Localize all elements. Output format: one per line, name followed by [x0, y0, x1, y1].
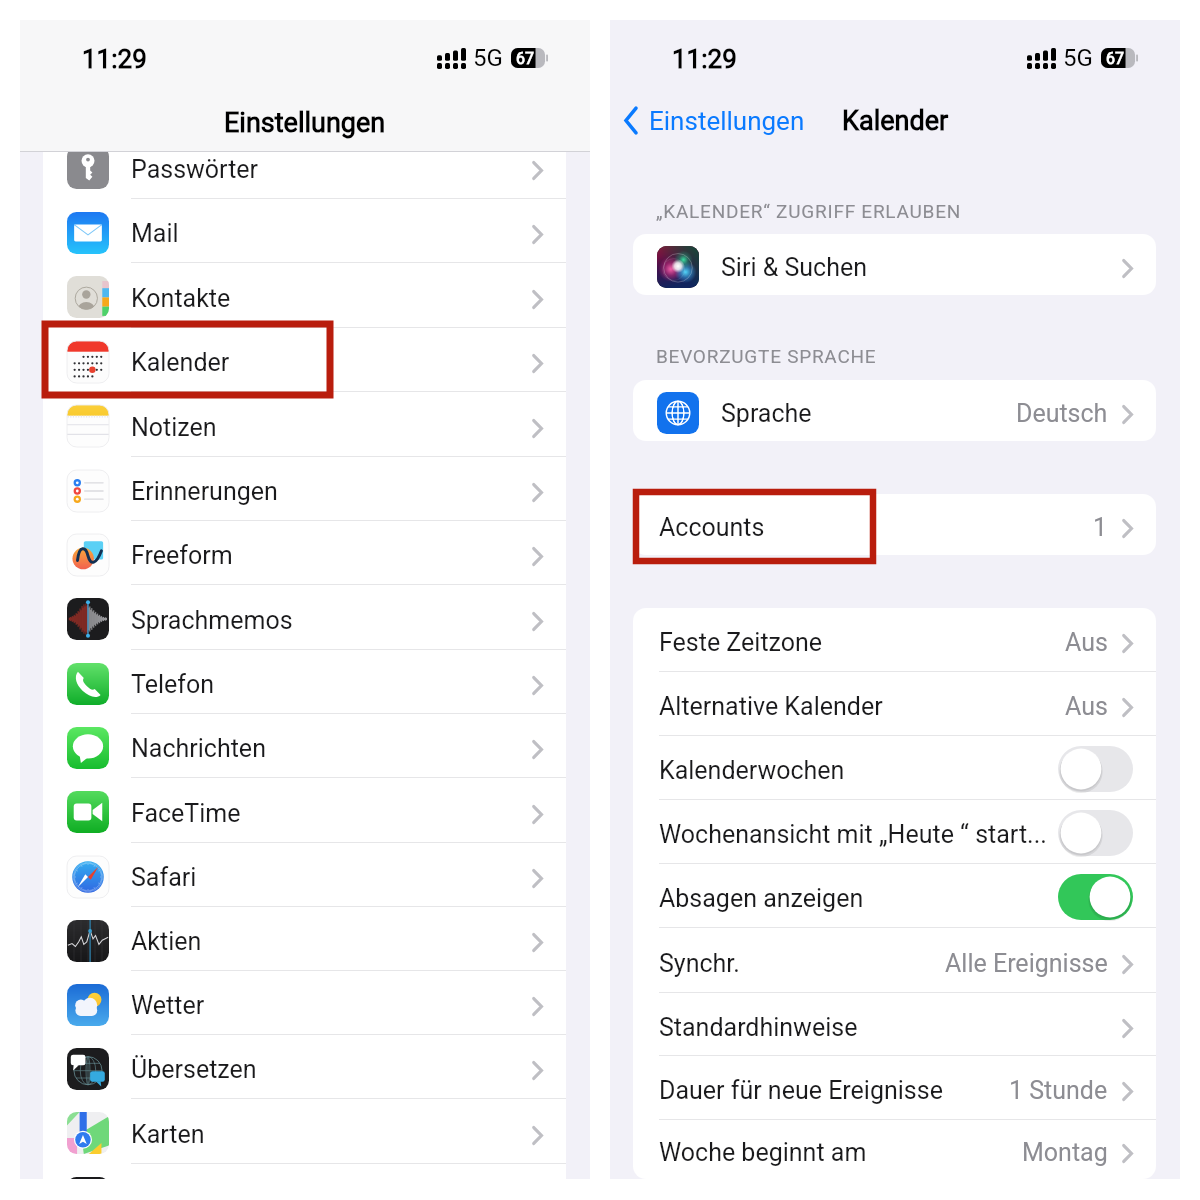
- button[interactable]: Mail: [43, 199, 566, 262]
- staticText: Siri & Suchen: [721, 253, 867, 282]
- staticText: Einstellungen: [224, 107, 386, 139]
- button[interactable]: Erinnerungen: [43, 457, 566, 520]
- button[interactable]: Accounts: [633, 494, 1156, 555]
- staticText: Telefon: [131, 670, 215, 699]
- staticText: Montag: [1022, 1138, 1108, 1167]
- staticText: Safari: [131, 863, 197, 892]
- staticText: Sprache: [721, 399, 812, 428]
- staticText: Kalenderwochen: [659, 756, 845, 785]
- button[interactable]: Übersetzen: [43, 1035, 566, 1098]
- button[interactable]: Absagen anzeigen: [633, 864, 1156, 927]
- button[interactable]: Siri & Suchen: [633, 234, 1156, 295]
- staticText: Alternative Kalender: [659, 692, 883, 721]
- button[interactable]: Kontakte: [43, 263, 566, 327]
- staticText: Standardhinweise: [659, 1013, 858, 1042]
- staticText: Aus: [1065, 692, 1108, 721]
- button[interactable]: Alternative Kalender: [633, 672, 1156, 735]
- button[interactable]: FaceTime: [43, 778, 566, 842]
- button[interactable]: Feste Zeitzone: [633, 608, 1156, 671]
- staticText: Übersetzen: [131, 1055, 257, 1084]
- button[interactable]: Passwörter: [43, 152, 566, 198]
- staticText: Sprachmemos: [131, 606, 293, 635]
- staticText: Karten: [131, 1120, 205, 1149]
- staticText: Erinnerungen: [131, 477, 278, 506]
- button[interactable]: Kalender: [43, 328, 566, 391]
- staticText: 11:29: [82, 44, 147, 74]
- button[interactable]: Einstellungen: [610, 100, 805, 142]
- button[interactable]: Karten: [43, 1099, 566, 1163]
- staticText: 67: [1106, 49, 1124, 68]
- staticText: BEVORZUGTE SPRACHE: [656, 345, 877, 367]
- button[interactable]: Dauer für neue Ereignisse: [633, 1056, 1156, 1119]
- button[interactable]: Synchr.: [633, 928, 1156, 992]
- button[interactable]: Freeform: [43, 521, 566, 584]
- staticText: Notizen: [131, 413, 217, 442]
- staticText: Aktien: [131, 927, 202, 956]
- button[interactable]: [1058, 746, 1133, 792]
- staticText: Einstellungen: [649, 106, 805, 136]
- staticText: Wetter: [131, 991, 205, 1020]
- staticText: Mail: [131, 219, 179, 248]
- button[interactable]: Aktien: [43, 907, 566, 970]
- button[interactable]: Woche beginnt am: [633, 1120, 1156, 1179]
- staticText: Wochenansicht mit „Heute “ start...: [659, 820, 1047, 849]
- staticText: 5G: [1063, 44, 1093, 72]
- button[interactable]: Standardhinweise: [633, 993, 1156, 1055]
- button[interactable]: Kalenderwochen: [633, 736, 1156, 799]
- button[interactable]: Notizen: [43, 392, 566, 456]
- staticText: Woche beginnt am: [659, 1138, 867, 1167]
- staticText: Synchr.: [659, 949, 740, 978]
- button[interactable]: Wochenansicht mit „Heute “ start...: [633, 800, 1156, 863]
- staticText: Feste Zeitzone: [659, 628, 823, 657]
- staticText: 1: [1093, 513, 1108, 542]
- staticText: Kalender: [131, 348, 230, 377]
- staticText: 67: [516, 49, 534, 68]
- staticText: Kalender: [842, 105, 949, 137]
- staticText: Alle Ereignisse: [945, 949, 1108, 978]
- staticText: 5G: [473, 44, 503, 72]
- button[interactable]: Telefon: [43, 650, 566, 713]
- button[interactable]: Sprache: [633, 380, 1156, 441]
- staticText: 1 Stunde: [1009, 1076, 1108, 1105]
- button[interactable]: Wetter: [43, 971, 566, 1034]
- staticText: Deutsch: [1016, 399, 1108, 428]
- staticText: 11:29: [672, 44, 737, 74]
- staticText: Passwörter: [131, 155, 259, 184]
- staticText: „KALENDER“ ZUGRIFF ERLAUBEN: [656, 200, 962, 222]
- staticText: Freeform: [131, 541, 233, 570]
- staticText: Kontakte: [131, 284, 231, 313]
- staticText: FaceTime: [131, 799, 241, 828]
- button[interactable]: Sprachmemos: [43, 585, 566, 649]
- staticText: Absagen anzeigen: [659, 884, 864, 913]
- button[interactable]: Safari: [43, 843, 566, 906]
- button[interactable]: [1058, 810, 1133, 856]
- staticText: Dauer für neue Ereignisse: [659, 1076, 943, 1105]
- button[interactable]: Nachrichten: [43, 714, 566, 777]
- button[interactable]: [1058, 874, 1133, 920]
- staticText: Aus: [1065, 628, 1108, 657]
- button[interactable]: Kompass: [43, 1164, 566, 1179]
- staticText: Nachrichten: [131, 734, 266, 763]
- staticText: Accounts: [659, 513, 765, 542]
